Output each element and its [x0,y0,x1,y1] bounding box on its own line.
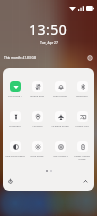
staticText: Mobile data [30,94,44,97]
button[interactable]: Mild visual effect [4,141,26,161]
staticText: Eco Suave • [8,94,22,97]
staticText: Silent mode [53,94,67,97]
button[interactable]: Eco Suave • [4,81,26,101]
button[interactable]: Bluetooth [71,81,93,101]
staticText: Screen cast [75,124,89,127]
button[interactable]: Silent mode [49,81,71,101]
button[interactable]: Power [5,176,16,187]
button[interactable]: Mobile data [26,81,48,101]
staticText: Eye comfort [53,154,68,157]
button[interactable]: Settings [85,53,95,63]
staticText: Mild visual effect [5,154,25,157]
staticText: This month: 41.83 GB [4,56,36,60]
button[interactable]: Power saving mode [71,141,93,161]
staticText: Dark mode [30,154,44,157]
button[interactable]: Flashlight [4,111,26,131]
staticText: Flashlight [9,124,21,127]
staticText: Location [32,124,43,127]
button[interactable]: Airplane mode [49,111,71,131]
button[interactable]: Screen cast [71,111,93,131]
staticText: Bluetooth [76,94,88,97]
button[interactable]: Location [26,111,48,131]
button[interactable]: Eye comfort [49,141,71,161]
button[interactable]: Dark mode [26,141,48,161]
staticText: Tue, Apr 27 [40,40,58,45]
staticText: Airplane mode [51,124,69,127]
button[interactable]: Expand [80,176,91,187]
staticText: Power saving mode [71,154,93,160]
staticText: 13:50 [29,20,68,39]
